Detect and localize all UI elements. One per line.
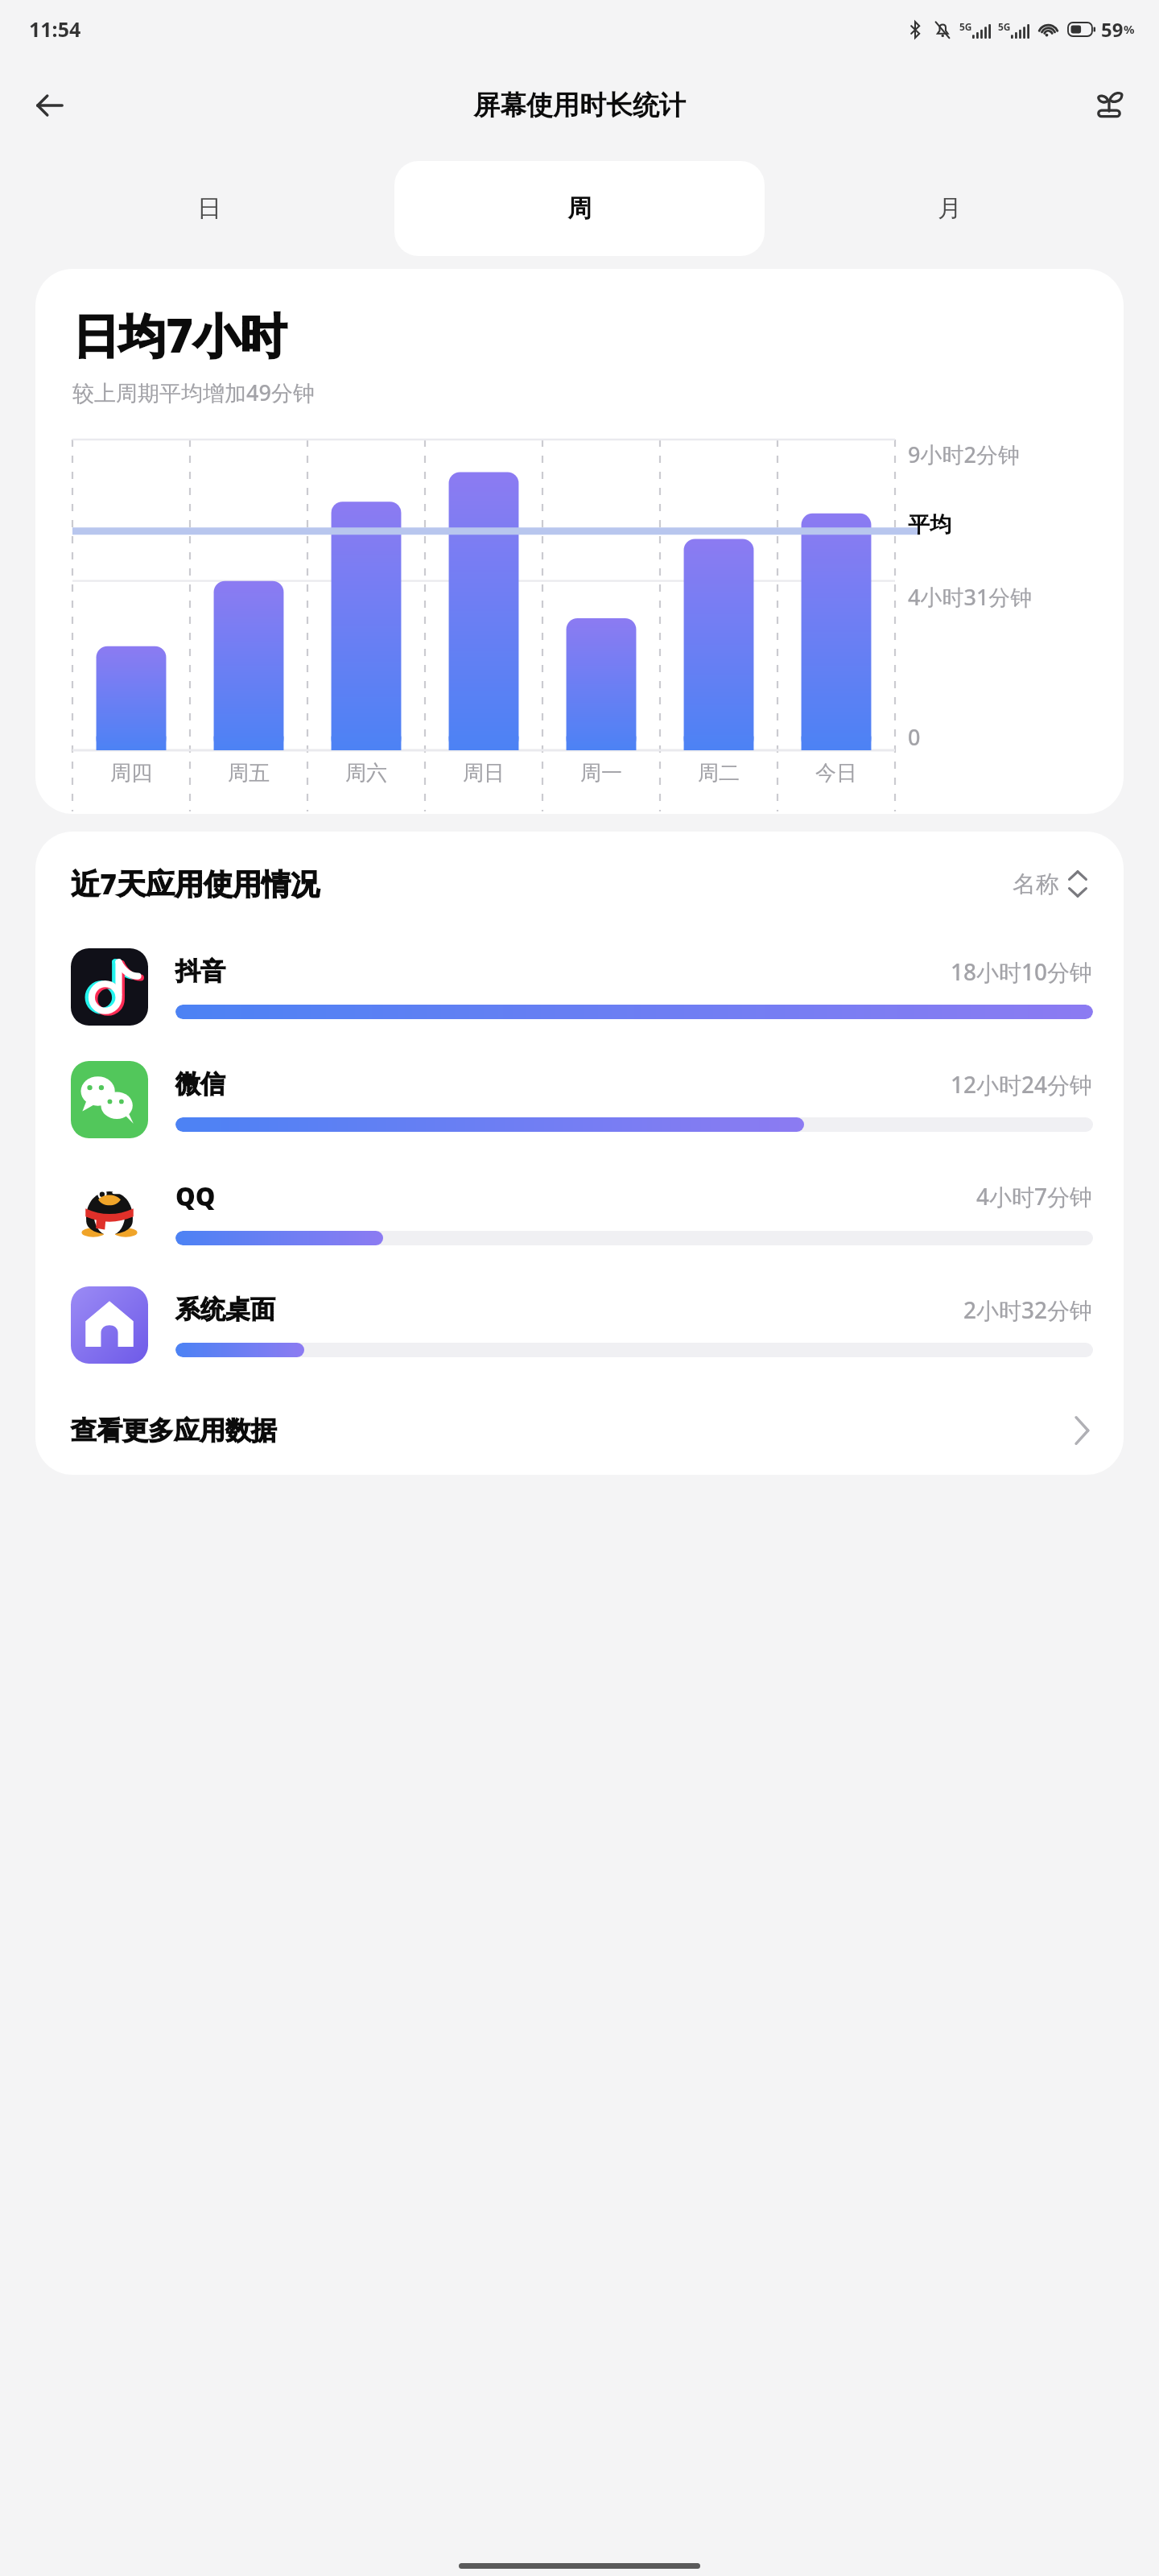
staticText: 11:54 — [29, 15, 81, 43]
staticText: 屏幕使用时长统计 — [473, 89, 686, 122]
staticText: 12小时24分钟 — [951, 1069, 1093, 1100]
button[interactable]: Focus mode — [1079, 75, 1140, 136]
staticText: 周四 — [110, 760, 152, 786]
staticText: 5G — [959, 20, 972, 33]
staticText: 微信 — [175, 1068, 225, 1100]
staticText: 5G — [998, 20, 1011, 33]
staticText: 4小时7分钟 — [976, 1181, 1093, 1212]
button[interactable]: 查看更多应用数据 — [71, 1386, 1093, 1475]
staticText: 抖音 — [175, 956, 225, 987]
button[interactable]: 系统桌面 — [71, 1269, 1093, 1381]
button[interactable]: 微信 — [71, 1043, 1093, 1156]
staticText: 59 — [1101, 16, 1124, 43]
staticText: 名称 — [1013, 869, 1059, 899]
staticText: 日 — [197, 193, 221, 224]
staticText: 周日 — [463, 760, 505, 786]
staticText: 平均 — [908, 511, 951, 539]
staticText: 今日 — [815, 760, 857, 786]
staticText: 9小时2分钟 — [908, 440, 1020, 469]
button[interactable]: QQ — [71, 1156, 1093, 1269]
button[interactable]: 日 — [24, 161, 394, 256]
staticText: 周 — [567, 193, 592, 224]
button[interactable]: 月 — [765, 161, 1135, 256]
staticText: QQ — [175, 1179, 216, 1213]
staticText: 系统桌面 — [175, 1294, 275, 1325]
staticText: 周一 — [580, 760, 622, 786]
staticText: % — [1124, 21, 1135, 37]
staticText: 近7天应用使用情况 — [71, 864, 320, 903]
staticText: 日均7小时 — [72, 303, 287, 366]
staticText: 周五 — [228, 760, 270, 786]
staticText: 18小时10分钟 — [951, 956, 1093, 987]
staticText: 周六 — [345, 760, 387, 786]
button[interactable]: Back — [19, 75, 80, 136]
button[interactable]: 名称 — [1008, 865, 1093, 903]
staticText: 查看更多应用数据 — [71, 1414, 277, 1447]
staticText: 月 — [938, 193, 962, 224]
staticText: 2小时32分钟 — [963, 1294, 1093, 1325]
staticText: 0 — [908, 722, 921, 752]
staticText: 较上周期平均增加49分钟 — [72, 378, 315, 407]
button[interactable]: 抖音 — [71, 931, 1093, 1043]
staticText: 周二 — [698, 760, 740, 786]
staticText: 4小时31分钟 — [908, 582, 1033, 612]
button[interactable]: 周 — [394, 161, 765, 256]
